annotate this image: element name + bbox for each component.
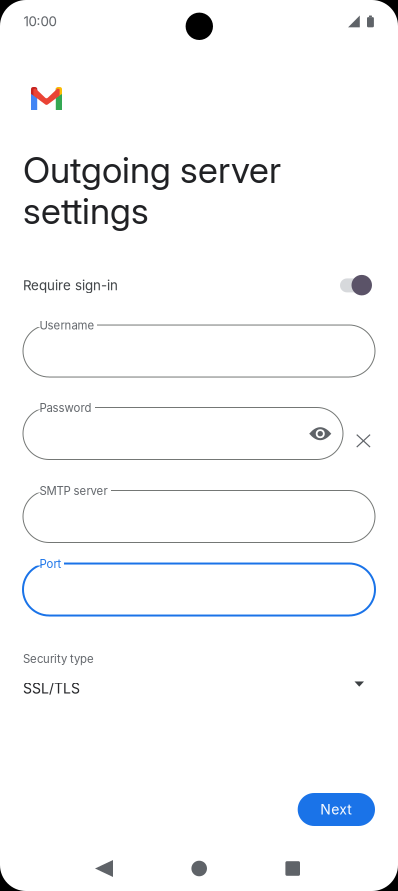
staticText: Next [320,801,352,818]
button[interactable]: Back [95,860,113,877]
button[interactable]: Require sign-in [340,275,372,296]
staticText: Port [39,557,61,571]
staticText: Password [39,401,91,415]
staticText: settings [23,189,149,233]
staticText: Outgoing server [23,148,281,192]
button[interactable]: Clear password [356,434,370,447]
button[interactable]: Port [23,555,375,615]
staticText: Require sign-in [23,277,118,293]
button[interactable]: Home [191,861,207,876]
button[interactable]: Username [23,317,375,377]
staticText: SSL/TLS [23,680,80,697]
staticText: Username [39,319,94,332]
button[interactable]: Security type [23,652,375,710]
button[interactable]: Next [298,793,375,826]
button[interactable]: SMTP server [23,482,375,542]
staticText: 10:00 [24,13,57,29]
staticText: SMTP server [39,484,107,498]
button[interactable]: Password [23,399,343,459]
staticText: Security type [23,652,94,666]
button[interactable]: Recent apps [285,861,300,876]
